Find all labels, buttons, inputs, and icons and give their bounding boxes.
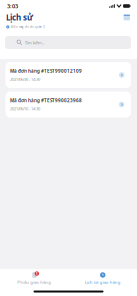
staticText: Tìm kiếm...	[25, 40, 45, 45]
staticText: Lịch sử	[6, 12, 33, 23]
button[interactable]: Chọn ngày	[124, 14, 130, 20]
button[interactable]: Mã đơn hàng #TEST990023968	[5, 91, 131, 117]
staticText: 2021/06/10 - 14:30	[10, 106, 40, 111]
staticText: Phiếu giao hàng	[17, 279, 51, 285]
button[interactable]: Lịch sử giao hàng	[68, 272, 137, 285]
staticText: Lịch sử giao hàng	[85, 279, 121, 285]
staticText: 1	[36, 271, 38, 276]
staticText: 2021/06/30 - 14:30	[10, 77, 40, 82]
staticText: Điện máy, chi chi quận 3	[11, 25, 45, 29]
button[interactable]: Mã đơn hàng #TEST990012109	[5, 62, 131, 88]
staticText: 3:03	[7, 2, 18, 10]
staticText: Mã đơn hàng #TEST990023968	[10, 97, 82, 104]
staticText: Mã đơn hàng #TEST990012109	[10, 68, 82, 74]
button[interactable]: 1	[0, 272, 68, 285]
